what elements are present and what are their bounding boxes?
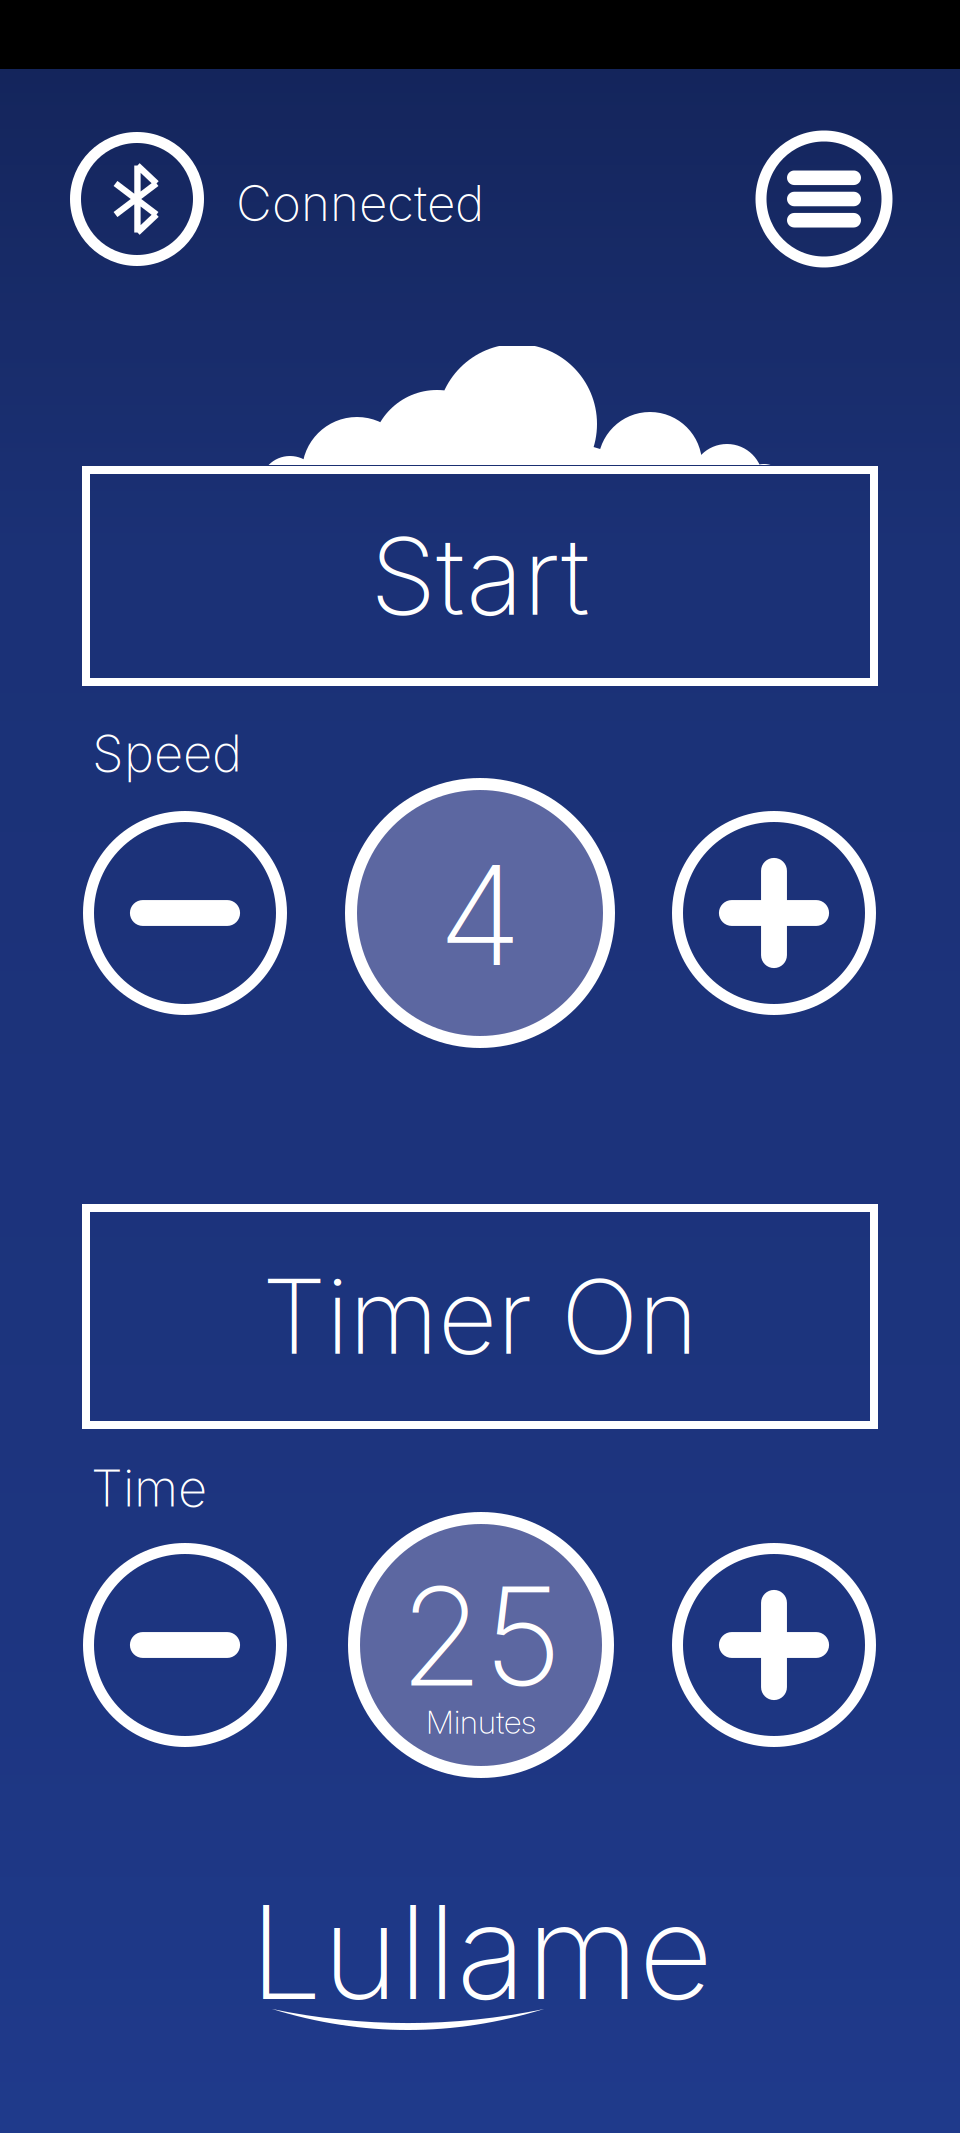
staticText: Speed bbox=[92, 722, 242, 784]
button[interactable]: Bluetooth connected bbox=[70, 132, 204, 266]
staticText: 4 bbox=[438, 832, 522, 998]
staticText: Lullame bbox=[249, 1874, 712, 2030]
button[interactable]: Start bbox=[82, 466, 878, 686]
button[interactable]: Timer On bbox=[82, 1204, 878, 1429]
button[interactable]: Decrease time bbox=[83, 1543, 287, 1747]
button[interactable]: Decrease speed bbox=[83, 811, 287, 1015]
button[interactable]: Increase time bbox=[672, 1543, 876, 1747]
staticText: Connected bbox=[236, 173, 484, 233]
staticText: Time bbox=[91, 1457, 207, 1519]
staticText: Timer On bbox=[262, 1254, 698, 1379]
button[interactable]: Increase speed bbox=[672, 811, 876, 1015]
staticText: 25 bbox=[399, 1554, 562, 1718]
staticText: Minutes bbox=[426, 1703, 536, 1741]
button[interactable]: Menu bbox=[755, 130, 892, 267]
staticText: Start bbox=[370, 511, 590, 641]
